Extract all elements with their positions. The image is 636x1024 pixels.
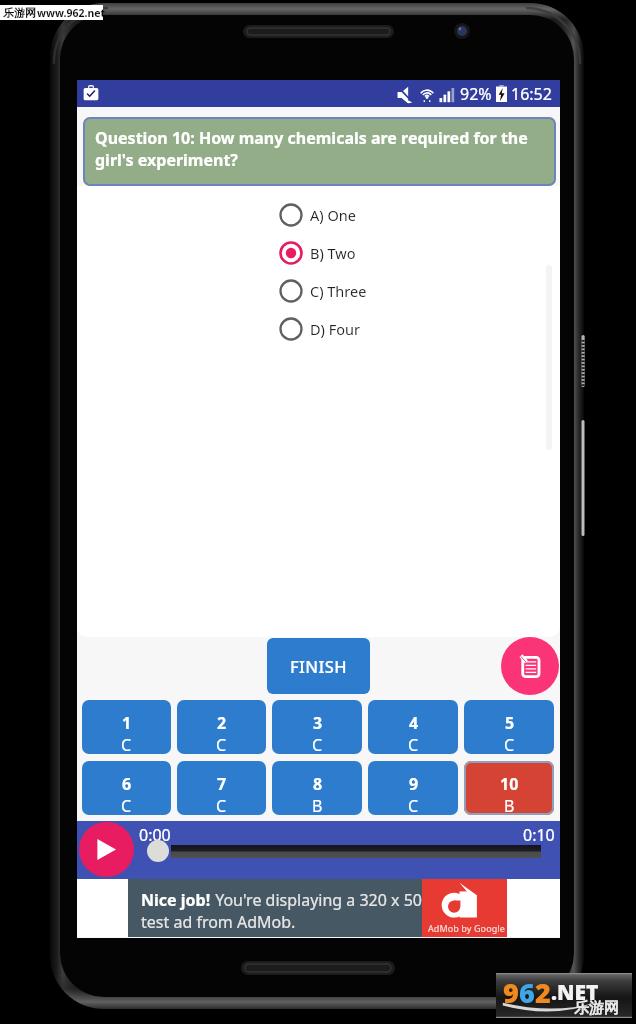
staticText: B: [504, 795, 515, 815]
staticText: 0:10: [523, 824, 555, 846]
button[interactable]: 3: [272, 700, 362, 754]
staticText: C: [121, 795, 132, 815]
button[interactable]: FINISH: [267, 638, 370, 694]
staticText: 1: [122, 712, 132, 734]
staticText: 2: [535, 974, 551, 1011]
staticText: AdMob by Google: [428, 922, 505, 934]
button[interactable]: Question 10: How many chemicals are requ…: [83, 117, 556, 186]
staticText: C: [121, 734, 132, 754]
button[interactable]: Review answers: [501, 637, 559, 695]
staticText: C: [408, 795, 419, 815]
staticText: 92%: [460, 83, 492, 105]
button[interactable]: Play: [79, 822, 134, 877]
button[interactable]: 4: [368, 700, 458, 754]
staticText: 10: [500, 773, 519, 795]
button[interactable]: 1: [82, 700, 171, 754]
staticText: 乐游网: [574, 999, 619, 1018]
staticText: 3: [313, 712, 323, 734]
staticText: 0:00: [139, 824, 171, 846]
staticText: C: [216, 795, 227, 815]
button[interactable]: 9: [368, 761, 458, 815]
staticText: You're displaying a 320 x 50: [211, 889, 423, 911]
staticText: test ad from AdMob.: [141, 911, 296, 933]
staticText: A) One: [310, 205, 356, 225]
staticText: C: [312, 734, 323, 754]
staticText: www.962.net: [37, 6, 106, 20]
staticText: 4: [409, 712, 419, 734]
staticText: D) Four: [310, 319, 360, 339]
button[interactable]: 10: [464, 761, 554, 815]
staticText: 16:52: [511, 83, 552, 105]
staticText: B) Two: [310, 243, 356, 263]
staticText: 7: [217, 773, 227, 795]
button[interactable]: C) Three: [279, 272, 429, 310]
button[interactable]: 5: [464, 700, 554, 754]
button[interactable]: B) Two: [279, 234, 429, 272]
staticText: .NET: [551, 978, 599, 1007]
button[interactable]: 6: [82, 761, 171, 815]
button[interactable]: A) One: [279, 196, 429, 234]
staticText: C: [504, 734, 515, 754]
staticText: 6: [122, 773, 132, 795]
staticText: Question 10: How many chemicals are requ…: [95, 127, 547, 171]
staticText: 6: [519, 974, 535, 1011]
staticText: C) Three: [310, 281, 367, 301]
staticText: 2: [217, 712, 227, 734]
button[interactable]: 8: [272, 761, 362, 815]
staticText: C: [216, 734, 227, 754]
button[interactable]: 2: [177, 700, 266, 754]
staticText: 9: [409, 773, 419, 795]
staticText: 乐游网: [3, 6, 36, 20]
staticText: B: [312, 795, 323, 815]
button[interactable]: 7: [177, 761, 266, 815]
staticText: Nice job!: [141, 889, 211, 911]
staticText: C: [408, 734, 419, 754]
staticText: 5: [505, 712, 515, 734]
staticText: FINISH: [290, 655, 348, 677]
staticText: 9: [503, 974, 519, 1011]
staticText: 8: [313, 773, 323, 795]
button[interactable]: D) Four: [279, 310, 429, 348]
